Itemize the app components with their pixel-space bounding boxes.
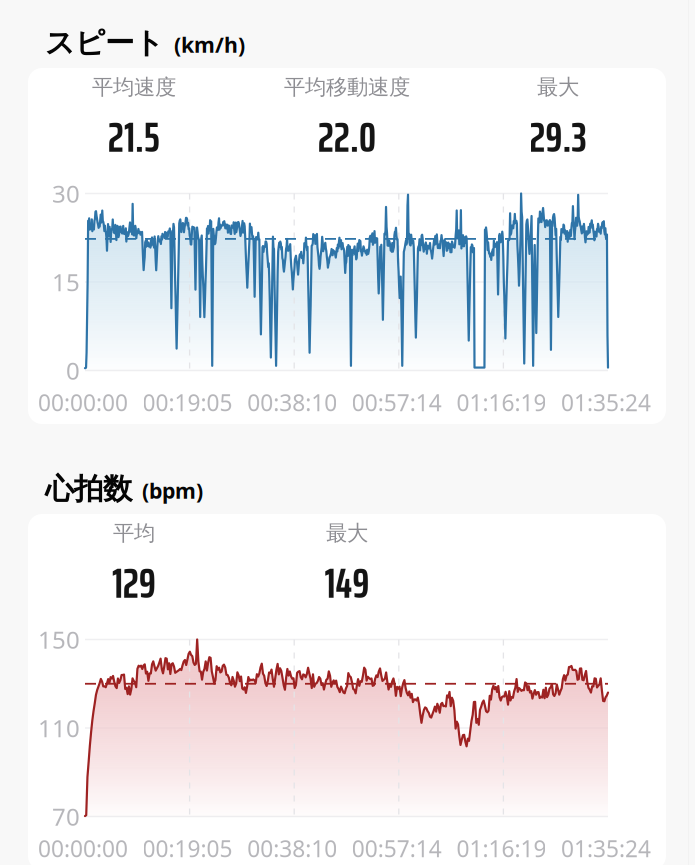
staticText: 最大	[537, 74, 579, 100]
staticText: 30	[52, 177, 80, 209]
staticText: 00:19:05	[143, 833, 233, 864]
staticText: 29.3	[529, 103, 586, 170]
staticText: 00:19:05	[143, 387, 233, 418]
staticText: (km/h)	[174, 30, 245, 59]
staticText: 平均移動速度	[284, 74, 410, 100]
staticText: 心拍数	[45, 471, 132, 507]
button[interactable]: 心拍数 (bpm) チャート	[28, 514, 666, 865]
staticText: 01:35:24	[561, 387, 651, 418]
staticText: 00:00:00	[38, 387, 128, 418]
staticText: 110	[38, 712, 80, 744]
staticText: 21.5	[108, 103, 160, 170]
staticText: 22.0	[318, 103, 376, 170]
staticText: 150	[38, 623, 80, 655]
staticText: 最大	[326, 520, 368, 546]
staticText: 00:38:10	[247, 833, 337, 864]
staticText: 149	[324, 549, 369, 616]
staticText: 平均速度	[92, 74, 176, 100]
staticText: スピート	[45, 25, 164, 61]
staticText: 129	[112, 549, 156, 616]
staticText: 15	[52, 266, 80, 298]
button[interactable]: スピート (km/h) チャート	[28, 68, 666, 424]
staticText: 00:57:14	[352, 833, 442, 864]
staticText: 00:57:14	[352, 387, 442, 418]
staticText: 00:38:10	[247, 387, 337, 418]
staticText: 00:00:00	[38, 833, 128, 864]
staticText: 01:16:19	[456, 387, 546, 418]
staticText: 70	[52, 800, 80, 832]
staticText: 01:16:19	[456, 833, 546, 864]
staticText: 0	[66, 354, 80, 386]
staticText: 平均	[113, 520, 155, 546]
staticText: (bpm)	[142, 476, 203, 505]
staticText: 01:35:24	[561, 833, 651, 864]
